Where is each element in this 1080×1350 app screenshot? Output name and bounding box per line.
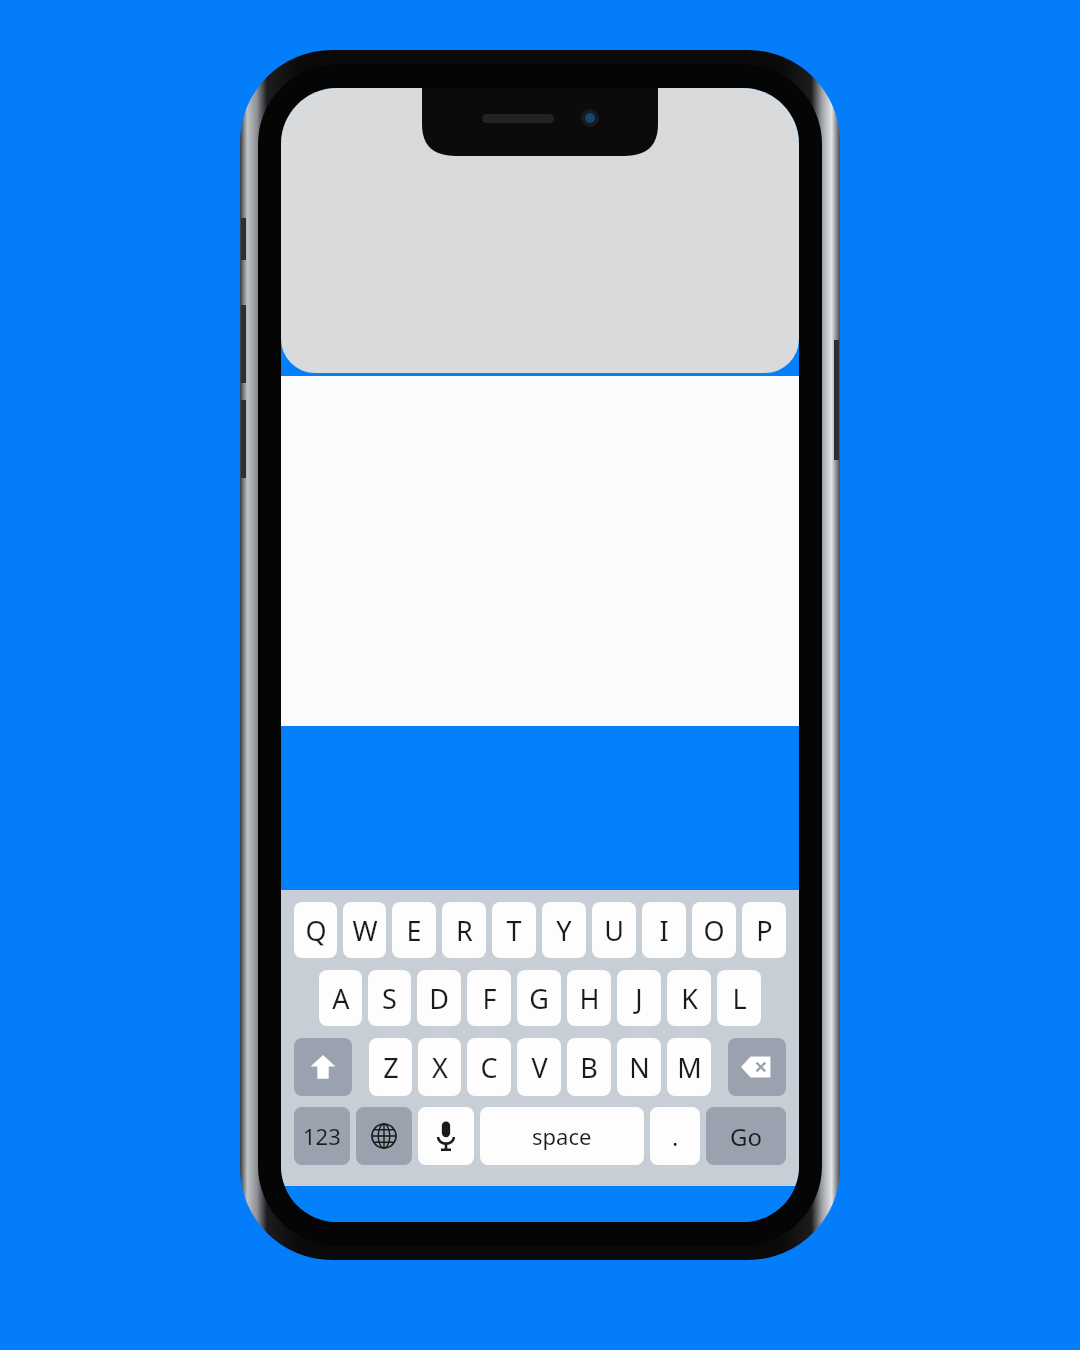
button[interactable]: O — [692, 902, 736, 958]
button[interactable]: D — [417, 970, 461, 1026]
staticText: C — [480, 1049, 498, 1086]
staticText: W — [352, 912, 378, 949]
button[interactable]: H — [567, 970, 611, 1026]
staticText: Go — [730, 1120, 762, 1153]
staticText: . — [672, 1120, 679, 1153]
button[interactable]: Voice input — [418, 1107, 474, 1165]
button[interactable]: 123 — [294, 1107, 350, 1165]
staticText: K — [681, 980, 698, 1017]
button[interactable]: J — [617, 970, 661, 1026]
button[interactable]: T — [492, 902, 536, 958]
button[interactable]: Go — [706, 1107, 786, 1165]
staticText: I — [659, 912, 669, 949]
staticText: Q — [305, 912, 327, 949]
button[interactable]: I — [642, 902, 686, 958]
button[interactable]: P — [742, 902, 786, 958]
staticText: space — [532, 1121, 592, 1151]
staticText: E — [406, 912, 422, 949]
staticText: 123 — [303, 1121, 341, 1151]
staticText: X — [432, 1049, 448, 1086]
staticText: A — [332, 980, 350, 1017]
button[interactable]: R — [442, 902, 486, 958]
button[interactable]: S — [368, 970, 411, 1026]
button[interactable]: A — [319, 970, 362, 1026]
staticText: O — [703, 912, 725, 949]
button[interactable]: K — [667, 970, 711, 1026]
staticText: B — [580, 1049, 598, 1086]
button[interactable]: V — [517, 1038, 561, 1096]
button[interactable]: B — [567, 1038, 611, 1096]
staticText: S — [382, 980, 397, 1017]
button[interactable]: space — [480, 1107, 644, 1165]
staticText: J — [635, 980, 643, 1017]
staticText: G — [529, 980, 549, 1017]
staticText: M — [677, 1049, 702, 1086]
button[interactable]: F — [467, 970, 511, 1026]
button[interactable]: C — [467, 1038, 511, 1096]
staticText: F — [482, 980, 497, 1017]
staticText: H — [579, 980, 600, 1017]
staticText: D — [429, 980, 449, 1017]
button[interactable]: W — [343, 902, 386, 958]
button[interactable]: . — [650, 1107, 700, 1165]
staticText: N — [629, 1049, 650, 1086]
button[interactable]: E — [392, 902, 436, 958]
button[interactable]: Q — [294, 902, 337, 958]
staticText: U — [604, 912, 624, 949]
button[interactable]: Y — [542, 902, 586, 958]
staticText: R — [456, 912, 473, 949]
button[interactable]: X — [418, 1038, 461, 1096]
staticText: L — [732, 980, 747, 1017]
button[interactable]: Change keyboard — [356, 1107, 412, 1165]
staticText: Y — [556, 912, 572, 949]
button[interactable]: Z — [369, 1038, 412, 1096]
button[interactable]: Backspace — [728, 1038, 786, 1096]
button[interactable]: L — [717, 970, 761, 1026]
staticText: V — [531, 1049, 548, 1086]
button[interactable]: N — [617, 1038, 661, 1096]
button[interactable]: G — [517, 970, 561, 1026]
button[interactable]: U — [592, 902, 636, 958]
staticText: T — [506, 912, 522, 949]
button[interactable]: Shift — [294, 1038, 352, 1096]
staticText: P — [756, 912, 773, 949]
staticText: Z — [383, 1049, 399, 1086]
button[interactable]: M — [667, 1038, 711, 1096]
